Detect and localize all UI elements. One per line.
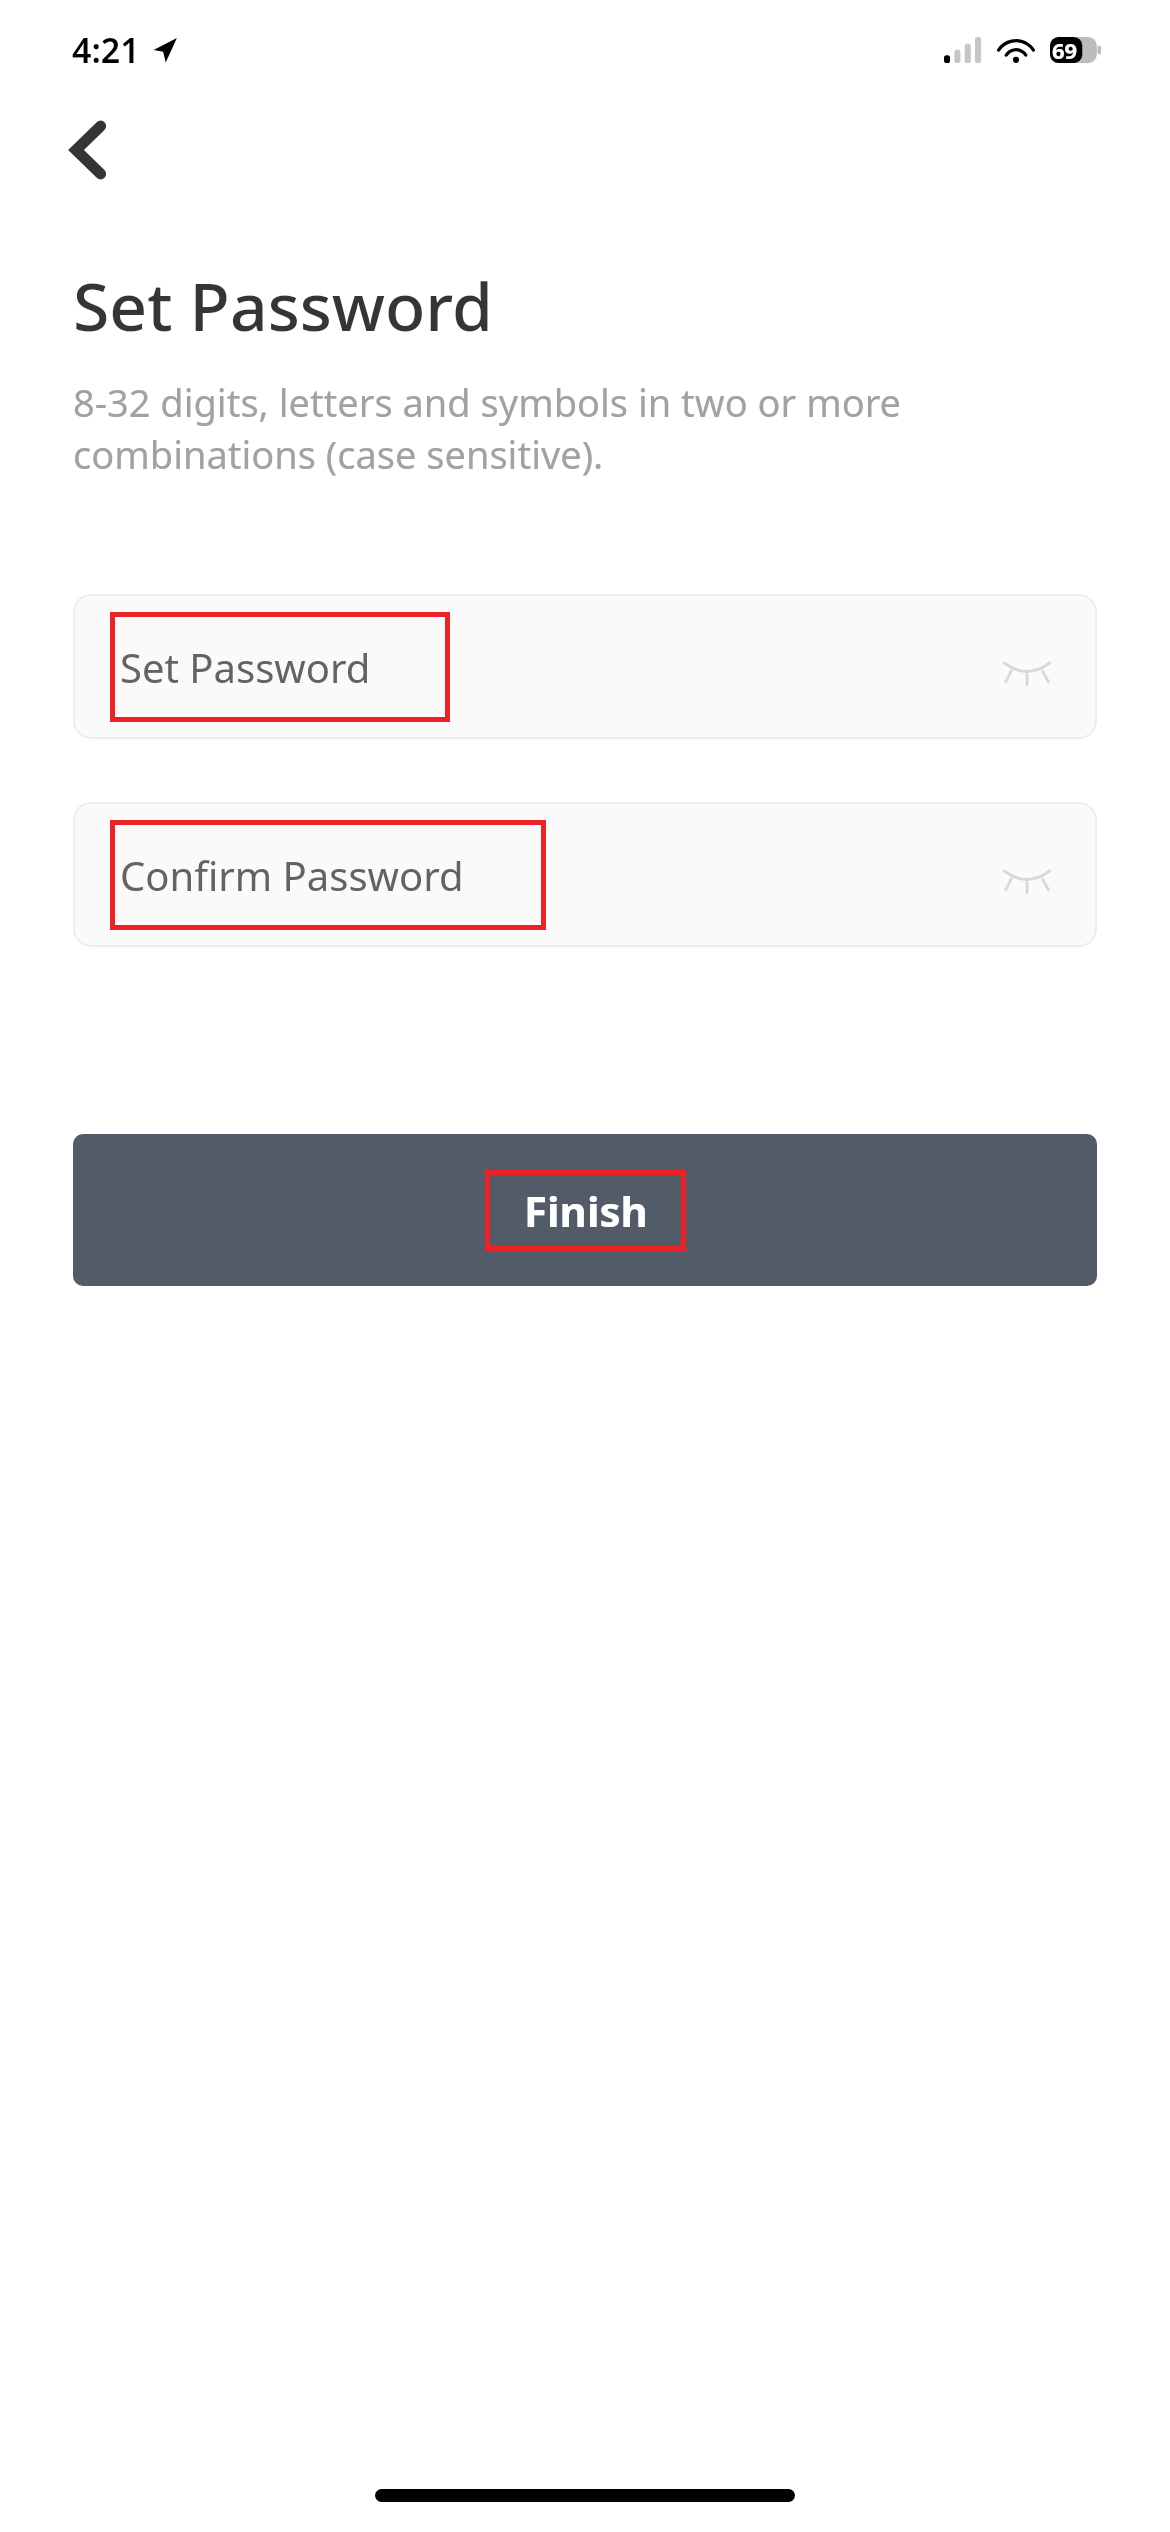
staticText: Set Password (120, 640, 371, 694)
staticText: Set Password (73, 260, 493, 350)
button[interactable]: Set Password (73, 594, 1097, 739)
button[interactable]: Finish (73, 1134, 1097, 1286)
staticText: 4:21 (72, 27, 140, 73)
staticText: Confirm Password (120, 848, 464, 902)
button[interactable]: Confirm Password (73, 802, 1097, 947)
button[interactable]: Back (46, 108, 130, 192)
button[interactable]: Show password (997, 637, 1057, 697)
staticText: Finish (524, 1182, 648, 1239)
button[interactable]: Show password (997, 845, 1057, 905)
staticText: 69 (1052, 35, 1078, 65)
staticText: 8-32 digits, letters and symbols in two … (73, 376, 1097, 480)
